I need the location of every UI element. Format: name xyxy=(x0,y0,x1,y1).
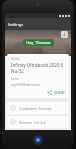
button[interactable]: Profile xyxy=(61,31,68,38)
staticText: Serial xyxy=(11,77,19,81)
staticText: uyh53Dnmmxn xyxy=(11,82,41,87)
button[interactable]: SHARE xyxy=(46,89,66,96)
staticText: Hey, Thomas xyxy=(26,40,51,45)
staticText: SHARE xyxy=(54,90,65,95)
staticText: Model xyxy=(11,57,20,61)
staticText: Customer Service xyxy=(19,106,63,111)
button[interactable]: Customer Service xyxy=(7,102,69,114)
button[interactable]: Service Centre xyxy=(7,116,69,128)
staticText: Infinity Ultrabook 2020 X Nu-32 xyxy=(11,62,66,74)
button[interactable]: Model xyxy=(7,54,69,98)
button[interactable]: Hey, Thomas xyxy=(23,39,54,46)
staticText: Service Centre xyxy=(19,120,63,125)
staticText: Settings xyxy=(8,22,24,27)
